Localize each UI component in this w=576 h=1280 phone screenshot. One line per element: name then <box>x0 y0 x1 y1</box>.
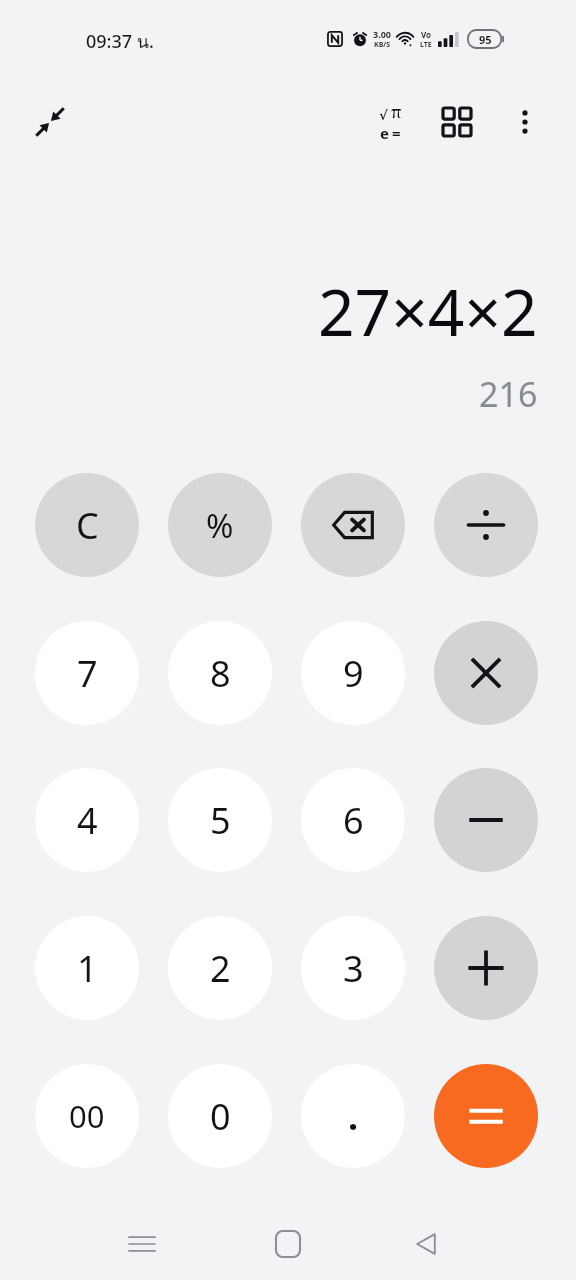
button[interactable]: 1 <box>35 916 139 1020</box>
button[interactable]: 2 <box>168 916 272 1020</box>
button[interactable]: 8 <box>168 621 272 725</box>
button[interactable]: Unit converter <box>429 94 485 150</box>
staticText: . <box>348 1092 359 1141</box>
button[interactable]: Scientific mode <box>362 94 418 150</box>
staticText: 27×4×2 <box>318 268 538 355</box>
button[interactable]: 7 <box>35 621 139 725</box>
button[interactable]: 9 <box>301 621 405 725</box>
button[interactable]: Divide <box>434 473 538 577</box>
staticText: 9 <box>343 649 364 698</box>
staticText: 3.00 <box>373 28 391 40</box>
staticText: e <box>380 123 389 143</box>
button[interactable]: 5 <box>168 768 272 872</box>
staticText: % <box>206 503 234 548</box>
staticText: 00 <box>69 1095 105 1137</box>
staticText: 6 <box>343 796 364 845</box>
button[interactable]: % <box>168 473 272 577</box>
staticText: 4 <box>77 796 98 845</box>
staticText: √ <box>379 108 388 123</box>
staticText: 216 <box>479 371 538 417</box>
button[interactable]: Recent apps <box>116 1218 168 1270</box>
staticText: π <box>391 101 402 123</box>
staticText: = <box>392 123 401 143</box>
button[interactable]: Backspace <box>301 473 405 577</box>
staticText: C <box>76 501 99 550</box>
button[interactable]: 6 <box>301 768 405 872</box>
button[interactable]: 3 <box>301 916 405 1020</box>
button[interactable]: C <box>35 473 139 577</box>
staticText: 8 <box>210 649 231 698</box>
button[interactable]: Equals <box>434 1064 538 1168</box>
staticText: 1 <box>77 944 98 993</box>
staticText: 95 <box>479 32 492 47</box>
button[interactable]: 4 <box>35 768 139 872</box>
button[interactable]: More options <box>497 94 553 150</box>
staticText: 0 <box>210 1092 231 1141</box>
button[interactable]: Back <box>401 1218 453 1270</box>
staticText: 09:37 น. <box>86 27 154 56</box>
button[interactable]: Add <box>434 916 538 1020</box>
button[interactable]: Home <box>262 1218 314 1270</box>
button[interactable]: Multiply <box>434 621 538 725</box>
staticText: Vo <box>421 29 432 40</box>
button[interactable]: Collapse <box>22 94 78 150</box>
button[interactable]: 00 <box>35 1064 139 1168</box>
button[interactable]: . <box>301 1064 405 1168</box>
staticText: LTE <box>420 40 432 50</box>
button[interactable]: 0 <box>168 1064 272 1168</box>
button[interactable]: Subtract <box>434 768 538 872</box>
staticText: KB/S <box>374 40 391 50</box>
staticText: 2 <box>210 944 231 993</box>
staticText: 5 <box>210 796 231 845</box>
staticText: 7 <box>77 649 98 698</box>
staticText: 3 <box>343 944 364 993</box>
